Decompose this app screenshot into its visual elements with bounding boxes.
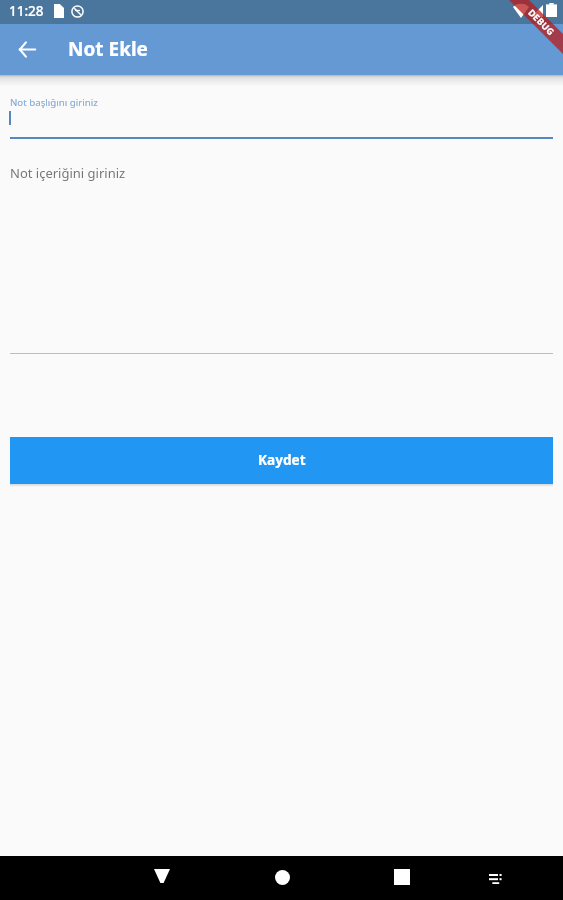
button[interactable]: Not başlığını giriniz — [10, 90, 553, 139]
button[interactable]: Not içeriğini giriniz — [10, 158, 553, 354]
button[interactable]: Back — [0, 24, 53, 74]
button[interactable]: Recent apps — [378, 855, 426, 899]
button[interactable]: Switch keyboard — [472, 857, 520, 900]
button[interactable]: Home — [258, 855, 306, 899]
staticText: Not içeriğini giriniz — [10, 164, 126, 182]
button[interactable]: Kaydet — [10, 437, 553, 484]
staticText: Not başlığını giriniz — [10, 96, 98, 109]
staticText: Kaydet — [258, 450, 306, 469]
staticText: 11:28 — [9, 2, 44, 20]
staticText: Not Ekle — [68, 36, 148, 62]
button[interactable]: Back — [138, 854, 186, 898]
